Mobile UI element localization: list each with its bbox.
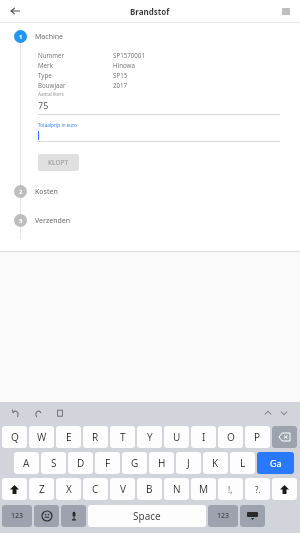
staticText: ?. <box>255 484 261 495</box>
button[interactable]: I <box>191 426 216 448</box>
staticText: 123 <box>11 511 24 521</box>
button[interactable]: X <box>56 478 81 500</box>
staticText: R <box>92 430 99 444</box>
staticText: F <box>105 456 111 470</box>
staticText: Kosten <box>35 187 58 197</box>
button[interactable]: Q <box>2 426 27 448</box>
button[interactable]: 2 <box>14 185 300 198</box>
button[interactable]: M <box>191 478 216 500</box>
button[interactable]: L <box>230 452 255 474</box>
button[interactable]: Ga <box>257 452 294 474</box>
button[interactable]: Shift <box>2 478 27 500</box>
button[interactable]: Z <box>29 478 54 500</box>
staticText: L <box>240 456 246 470</box>
button[interactable]: Redo <box>30 405 46 421</box>
button[interactable]: 123 <box>2 505 32 527</box>
staticText: N <box>173 482 181 496</box>
button[interactable]: Backspace <box>272 426 297 448</box>
staticText: 1 <box>19 33 23 41</box>
staticText: 123 <box>217 511 230 521</box>
button[interactable]: J <box>176 452 201 474</box>
staticText: Z <box>39 482 45 496</box>
button[interactable]: Y <box>137 426 162 448</box>
staticText: C <box>92 482 99 496</box>
staticText: X <box>66 482 72 496</box>
button[interactable]: O <box>218 426 243 448</box>
staticText: Machine <box>35 32 64 42</box>
button[interactable]: C <box>83 478 108 500</box>
staticText: Ga <box>270 457 282 469</box>
button[interactable]: Shift right <box>272 478 297 500</box>
button[interactable]: U <box>164 426 189 448</box>
staticText: M <box>199 482 209 496</box>
button[interactable]: W <box>29 426 54 448</box>
staticText: Hinowa <box>113 61 135 69</box>
button[interactable]: Hide keyboard <box>240 505 265 527</box>
button[interactable]: Menu <box>278 3 294 19</box>
button[interactable]: D <box>68 452 93 474</box>
staticText: D <box>77 456 85 470</box>
button[interactable]: T <box>110 426 135 448</box>
staticText: 2 <box>19 188 23 196</box>
button[interactable]: K <box>203 452 228 474</box>
button[interactable]: E <box>56 426 81 448</box>
staticText: Nummer <box>38 51 113 59</box>
button[interactable]: Aantal liters <box>38 91 280 115</box>
staticText: V <box>120 482 126 496</box>
button[interactable]: Copy <box>52 405 68 421</box>
staticText: W <box>37 430 47 444</box>
button[interactable]: Totaalprijs in euro <box>38 122 280 142</box>
button[interactable]: Space <box>88 505 206 527</box>
button[interactable]: Next field <box>276 405 292 421</box>
button[interactable]: ?. <box>245 478 270 500</box>
staticText: KLOPT <box>48 158 69 167</box>
button[interactable]: R <box>83 426 108 448</box>
staticText: Q <box>11 430 19 444</box>
staticText: Space <box>133 509 161 523</box>
staticText: Aantal liters <box>38 91 64 97</box>
staticText: 75 <box>38 99 49 111</box>
staticText: I <box>202 430 206 444</box>
staticText: Type <box>38 71 113 79</box>
button[interactable]: F <box>95 452 120 474</box>
staticText: U <box>173 430 181 444</box>
button[interactable]: V <box>110 478 135 500</box>
staticText: Merk <box>38 61 113 69</box>
button[interactable]: 1 <box>14 30 300 43</box>
button[interactable]: N <box>164 478 189 500</box>
staticText: 2017 <box>113 81 128 89</box>
button[interactable]: !, <box>218 478 243 500</box>
button[interactable]: P <box>245 426 270 448</box>
staticText: S <box>51 456 57 470</box>
button[interactable]: B <box>137 478 162 500</box>
button[interactable]: A <box>14 452 39 474</box>
button[interactable]: 123 <box>208 505 238 527</box>
button[interactable]: S <box>41 452 66 474</box>
staticText: Bouwjaar <box>38 81 113 89</box>
staticText: O <box>227 430 235 444</box>
staticText: B <box>146 482 153 496</box>
button[interactable]: Voice input <box>61 505 86 527</box>
staticText: !, <box>228 484 233 495</box>
staticText: P <box>254 430 261 444</box>
button[interactable]: Emoji <box>34 505 59 527</box>
staticText: SP15 <box>113 71 128 79</box>
staticText: SP1570001 <box>113 51 145 59</box>
button[interactable]: KLOPT <box>38 154 79 171</box>
button[interactable]: 3 <box>14 214 300 227</box>
staticText: T <box>120 430 126 444</box>
staticText: E <box>66 430 72 444</box>
staticText: 3 <box>19 217 23 225</box>
button[interactable]: Previous field <box>260 405 276 421</box>
staticText: H <box>158 456 166 470</box>
staticText: Brandstof <box>130 6 170 17</box>
staticText: G <box>131 456 139 470</box>
staticText: J <box>187 456 190 470</box>
button[interactable]: H <box>149 452 174 474</box>
staticText: Y <box>147 430 153 444</box>
staticText: K <box>212 456 219 470</box>
staticText: Verzenden <box>35 216 71 226</box>
button[interactable]: G <box>122 452 147 474</box>
button[interactable]: Undo <box>8 405 24 421</box>
button[interactable]: Back <box>6 2 24 20</box>
